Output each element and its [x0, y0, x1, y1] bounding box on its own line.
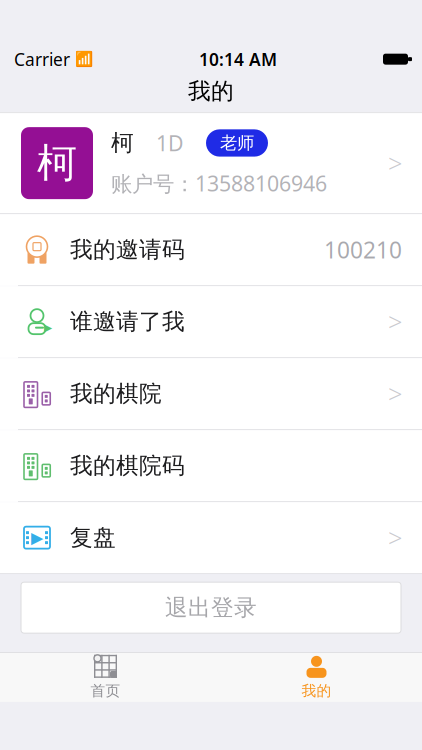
- staticText: 1D: [156, 129, 184, 157]
- staticText: 📶: [75, 51, 93, 68]
- staticText: 复盘: [70, 524, 116, 551]
- staticText: 我的棋院: [70, 380, 162, 407]
- button[interactable]: 柯: [0, 113, 422, 213]
- staticText: >: [388, 521, 402, 554]
- staticText: >: [388, 377, 402, 410]
- staticText: 首页: [90, 682, 120, 700]
- staticText: >: [388, 146, 402, 180]
- button[interactable]: ▶: [0, 286, 422, 357]
- staticText: 我的: [301, 682, 331, 700]
- button[interactable]: 首页: [0, 653, 211, 702]
- button[interactable]: 我的棋院: [0, 358, 422, 429]
- button[interactable]: 我的棋院码: [0, 430, 422, 501]
- staticText: Carrier: [14, 48, 70, 71]
- staticText: >: [388, 305, 402, 338]
- staticText: ▶: [31, 529, 43, 547]
- staticText: 我的邀请码: [70, 236, 185, 263]
- staticText: 我的棋院码: [70, 452, 185, 479]
- staticText: 谁邀请了我: [70, 308, 185, 335]
- staticText: 老师: [220, 132, 254, 154]
- staticText: 柯: [37, 139, 77, 188]
- staticText: 10:14 AM: [199, 48, 277, 71]
- staticText: 柯: [111, 129, 134, 157]
- button[interactable]: 退出登录: [21, 582, 401, 633]
- staticText: ▶: [44, 322, 52, 334]
- button[interactable]: ▶: [0, 502, 422, 573]
- button[interactable]: 我的: [211, 653, 422, 702]
- staticText: 100210: [324, 235, 402, 265]
- staticText: 我的: [188, 77, 234, 105]
- staticText: 账户号：13588106946: [111, 169, 327, 197]
- staticText: 退出登录: [165, 594, 257, 621]
- button[interactable]: 我的邀请码: [0, 214, 422, 285]
